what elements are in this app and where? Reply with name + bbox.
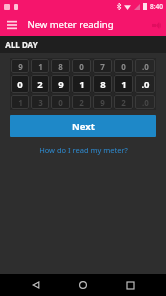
staticText: 8 <box>100 78 106 91</box>
staticText: 0 <box>79 61 84 72</box>
button[interactable]: 0 <box>114 59 133 73</box>
button[interactable]: More options <box>149 18 163 32</box>
staticText: 9 <box>18 61 23 72</box>
button[interactable]: 9 <box>11 59 29 73</box>
staticText: .0 <box>142 97 149 108</box>
button[interactable]: 1 <box>72 75 91 93</box>
staticText: 7 <box>100 61 105 72</box>
button[interactable]: 1 <box>31 59 49 73</box>
button[interactable]: 2 <box>114 95 133 109</box>
staticText: New meter reading <box>27 18 114 31</box>
staticText: 0 <box>58 97 63 108</box>
staticText: 1 <box>18 97 23 108</box>
staticText: 8 <box>58 61 63 72</box>
button[interactable]: Home <box>72 274 94 296</box>
button[interactable]: 2 <box>31 75 49 93</box>
button[interactable]: 8 <box>51 59 70 73</box>
button[interactable]: 0 <box>72 59 91 73</box>
staticText: .0 <box>142 61 149 72</box>
button[interactable]: .0 <box>135 59 155 73</box>
button[interactable]: 2 <box>72 95 91 109</box>
button[interactable]: 3 <box>31 95 49 109</box>
staticText: 2 <box>37 78 43 91</box>
button[interactable]: 0 <box>51 95 70 109</box>
staticText: Next <box>72 120 95 133</box>
staticText: 8:40 <box>150 2 163 11</box>
button[interactable]: 9 <box>93 95 112 109</box>
button[interactable]: How do I read my meter? <box>0 143 166 157</box>
staticText: 1 <box>38 61 43 72</box>
staticText: 1 <box>79 78 85 91</box>
button[interactable]: 9 <box>51 75 70 93</box>
staticText: .0 <box>141 78 150 91</box>
staticText: 2 <box>79 97 84 108</box>
staticText: 0 <box>17 78 23 91</box>
button[interactable]: Back <box>25 274 47 296</box>
staticText: 9 <box>58 78 64 91</box>
staticText: 1 <box>121 78 127 91</box>
button[interactable]: 1 <box>114 75 133 93</box>
button[interactable]: .0 <box>135 95 155 109</box>
button[interactable]: 8 <box>93 75 112 93</box>
staticText: 9 <box>100 97 105 108</box>
button[interactable]: Open navigation menu <box>4 17 20 33</box>
button[interactable]: 1 <box>11 95 29 109</box>
button[interactable]: Recent apps <box>119 274 141 296</box>
staticText: ALL DAY <box>5 39 38 50</box>
button[interactable]: 0 <box>11 75 29 93</box>
staticText: How do I read my meter? <box>39 145 128 155</box>
staticText: 3 <box>38 97 43 108</box>
button[interactable]: 7 <box>93 59 112 73</box>
button[interactable]: Next <box>10 115 156 137</box>
staticText: 2 <box>121 97 126 108</box>
button[interactable]: .0 <box>135 75 155 93</box>
staticText: 0 <box>121 61 126 72</box>
